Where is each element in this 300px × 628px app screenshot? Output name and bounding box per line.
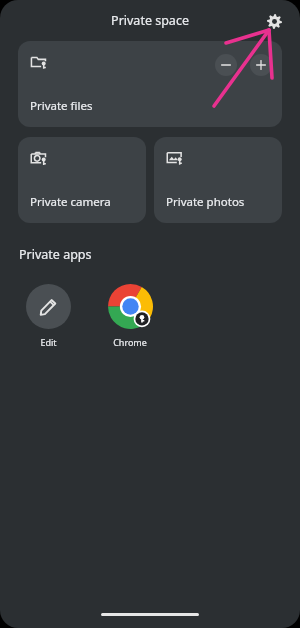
button[interactable]: Chrome [101, 284, 159, 348]
button[interactable]: Add [250, 54, 272, 76]
button[interactable]: Settings [262, 9, 286, 33]
button[interactable]: Private camera [18, 137, 146, 223]
staticText: Edit [40, 336, 57, 348]
button[interactable]: Remove [215, 54, 237, 76]
button[interactable]: Remove [18, 41, 282, 127]
staticText: Private apps [19, 246, 92, 263]
staticText: Private space [111, 12, 189, 29]
staticText: Private files [30, 98, 93, 114]
staticText: Chrome [113, 336, 147, 348]
button[interactable]: Edit [19, 284, 77, 348]
button[interactable]: Private photos [154, 137, 282, 223]
staticText: Private photos [166, 194, 245, 210]
staticText: Private camera [30, 194, 111, 210]
